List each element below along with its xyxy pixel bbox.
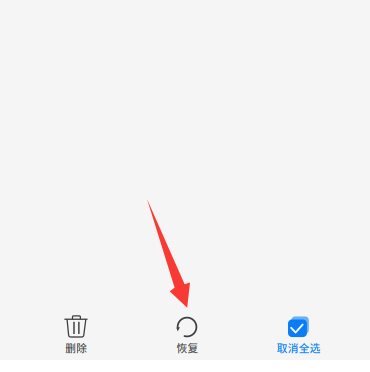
button[interactable]: 恢复 bbox=[132, 315, 243, 355]
staticText: 恢复 bbox=[176, 340, 198, 355]
button[interactable]: 取消全选 bbox=[243, 315, 354, 355]
staticText: 删除 bbox=[65, 340, 87, 355]
staticText: 取消全选 bbox=[277, 340, 321, 355]
button[interactable]: 删除 bbox=[21, 315, 132, 355]
